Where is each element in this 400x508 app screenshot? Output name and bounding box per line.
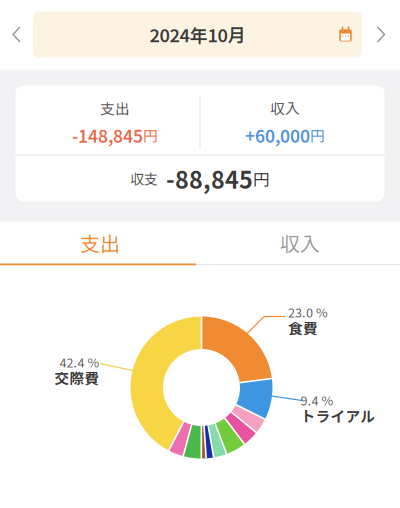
button[interactable]: 支出 [0, 221, 200, 263]
staticText: 収入 [270, 97, 300, 118]
button[interactable]: Next month [362, 11, 400, 57]
staticText: 収支 [130, 168, 158, 189]
button[interactable]: Previous month [0, 11, 33, 57]
staticText: 2024年10月 [149, 21, 245, 48]
staticText: -88,845 [166, 162, 253, 195]
staticText: 円 [253, 166, 270, 190]
staticText: +60,000 [245, 123, 310, 148]
button[interactable]: 2024年10月 [33, 11, 362, 57]
staticText: -148,845 [72, 123, 143, 148]
staticText: 収入 [280, 228, 320, 257]
staticText: 42.4 % [59, 353, 99, 371]
staticText: 支出 [80, 228, 120, 257]
staticText: 食費 [288, 317, 318, 338]
staticText: トライアル [300, 405, 375, 426]
staticText: 円 [310, 124, 325, 146]
button[interactable]: 収入 [200, 221, 400, 263]
staticText: 円 [143, 124, 158, 146]
staticText: 23.0 % [288, 303, 328, 321]
staticText: 支出 [100, 97, 130, 118]
staticText: 9.4 % [300, 391, 333, 409]
staticText: 交際費 [54, 367, 99, 388]
